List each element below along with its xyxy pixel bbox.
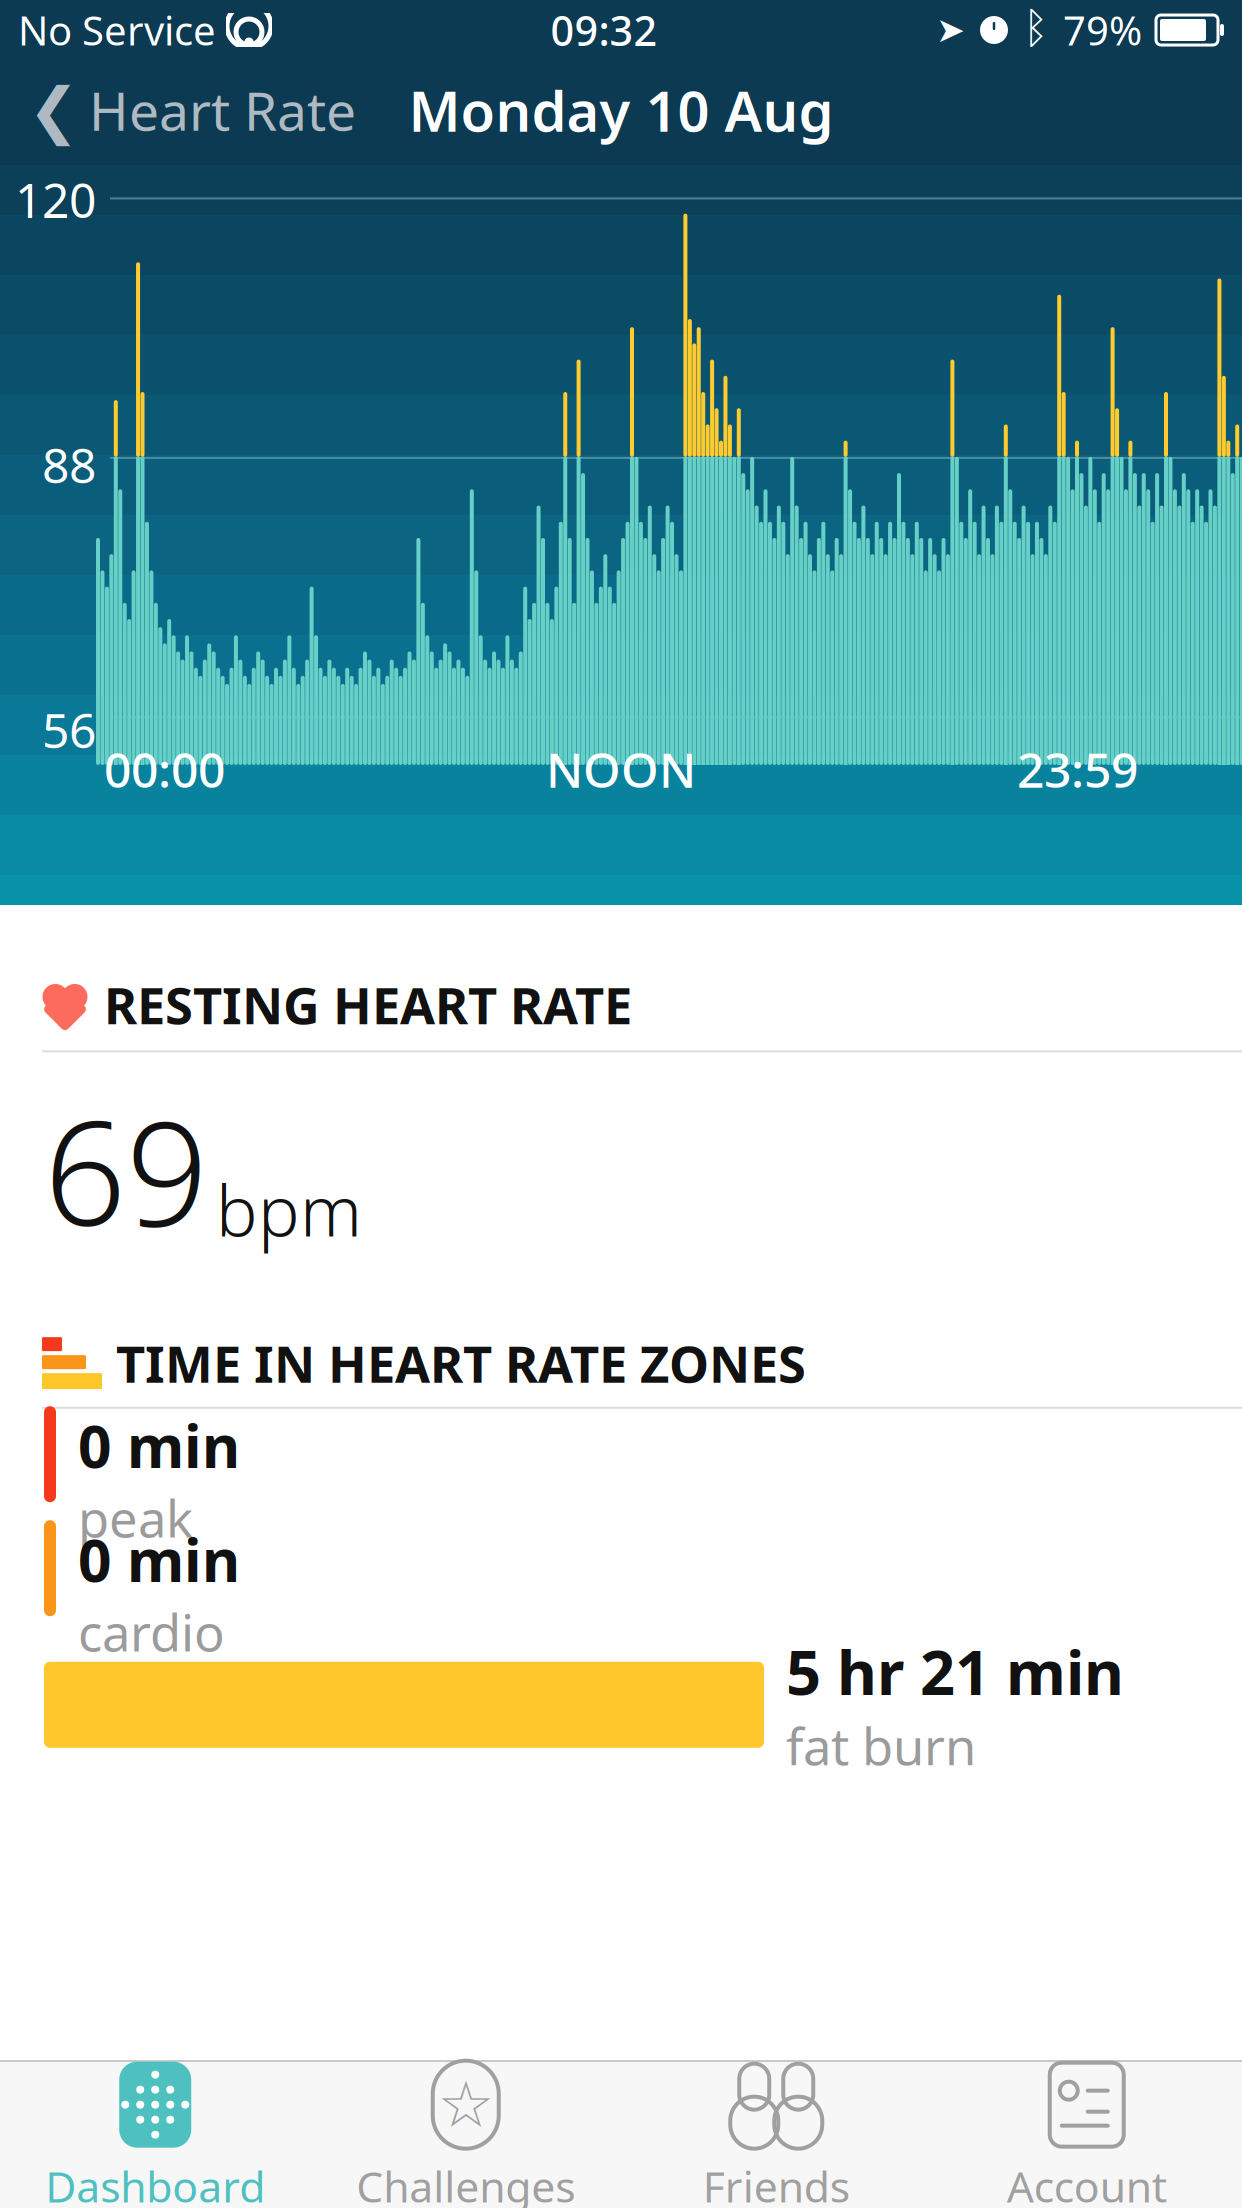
staticText: Monday 10 Aug [408, 73, 833, 147]
staticText: bpm [216, 1163, 362, 1255]
staticText: RESTING HEART RATE [104, 971, 632, 1038]
staticText: ☆ [437, 2068, 494, 2141]
button[interactable]: ❮ [0, 65, 356, 155]
button[interactable]: Account [931, 2046, 1242, 2208]
staticText: Beats Per Minute [445, 103, 852, 170]
staticText: No Service [18, 3, 216, 56]
staticText: NOON [546, 737, 696, 801]
staticText: 120 [15, 167, 96, 231]
staticText: 88 [42, 433, 96, 496]
staticText: 5 hr 21 min [786, 1630, 1124, 1712]
staticText: Friends [703, 2158, 850, 2208]
staticText: 0 min [78, 1520, 240, 1598]
staticText: ᛒ [1023, 9, 1049, 51]
staticText: 09:32 [550, 3, 657, 57]
staticText: ➤ [936, 10, 965, 50]
button[interactable]: ☆ [310, 2046, 621, 2208]
staticText: ❮ [28, 75, 79, 145]
staticText: Dashboard [45, 2158, 265, 2208]
staticText: 23:59 [1017, 737, 1138, 801]
staticText: cardio [78, 1598, 225, 1665]
staticText: fat burn [786, 1712, 976, 1779]
staticText: Heart Rate [89, 75, 356, 145]
button[interactable]: Dashboard [0, 2046, 310, 2208]
staticText: TIME IN HEART RATE ZONES [116, 1329, 806, 1397]
staticText: Account [1007, 2158, 1167, 2208]
button[interactable]: Friends [621, 2046, 931, 2208]
staticText: 69 [44, 1074, 208, 1265]
staticText: 79% [1063, 3, 1142, 56]
staticText: 0 min [78, 1406, 240, 1484]
staticText: Challenges [356, 2158, 575, 2208]
staticText: peak [78, 1484, 193, 1551]
staticText: 56 [42, 698, 96, 761]
staticText: 00:00 [104, 737, 225, 801]
